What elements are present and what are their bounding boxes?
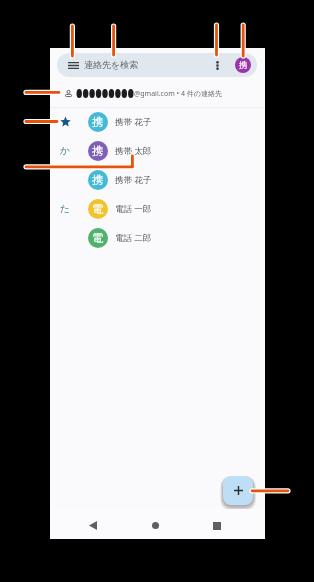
button[interactable]: Back <box>89 521 97 530</box>
staticText: 携 <box>92 173 104 187</box>
button[interactable]: た <box>50 194 265 223</box>
button[interactable]: Menu <box>62 56 84 74</box>
staticText: 電 <box>92 202 104 216</box>
button[interactable]: Add contact <box>223 476 253 505</box>
staticText: 電 <box>92 231 104 245</box>
button[interactable]: Account <box>235 57 251 73</box>
button[interactable]: 携 <box>50 107 265 136</box>
staticText: 携帯 花子 <box>115 116 152 128</box>
staticText: @gmail.com • 4 件の連絡先 <box>134 89 222 99</box>
staticText: 携帯 太郎 <box>115 145 152 157</box>
button[interactable]: 携 <box>50 165 265 194</box>
staticText: 携 <box>92 115 104 129</box>
staticText: 携帯 花子 <box>115 174 152 186</box>
staticText: か <box>60 144 71 157</box>
button[interactable]: Home <box>152 522 159 529</box>
staticText: 連絡先を検索 <box>84 59 139 70</box>
button[interactable]: か <box>50 136 265 165</box>
button[interactable]: More options <box>209 56 226 74</box>
button[interactable]: @gmail.com • 4 件の連絡先 <box>50 84 265 103</box>
staticText: た <box>60 202 71 215</box>
staticText: 携 <box>239 60 248 71</box>
button[interactable]: Menu <box>57 53 257 77</box>
staticText: 電話 二郎 <box>115 232 152 244</box>
staticText: 携 <box>92 144 104 158</box>
staticText: 電話 一郎 <box>115 203 152 215</box>
button[interactable]: 電 <box>50 223 265 252</box>
